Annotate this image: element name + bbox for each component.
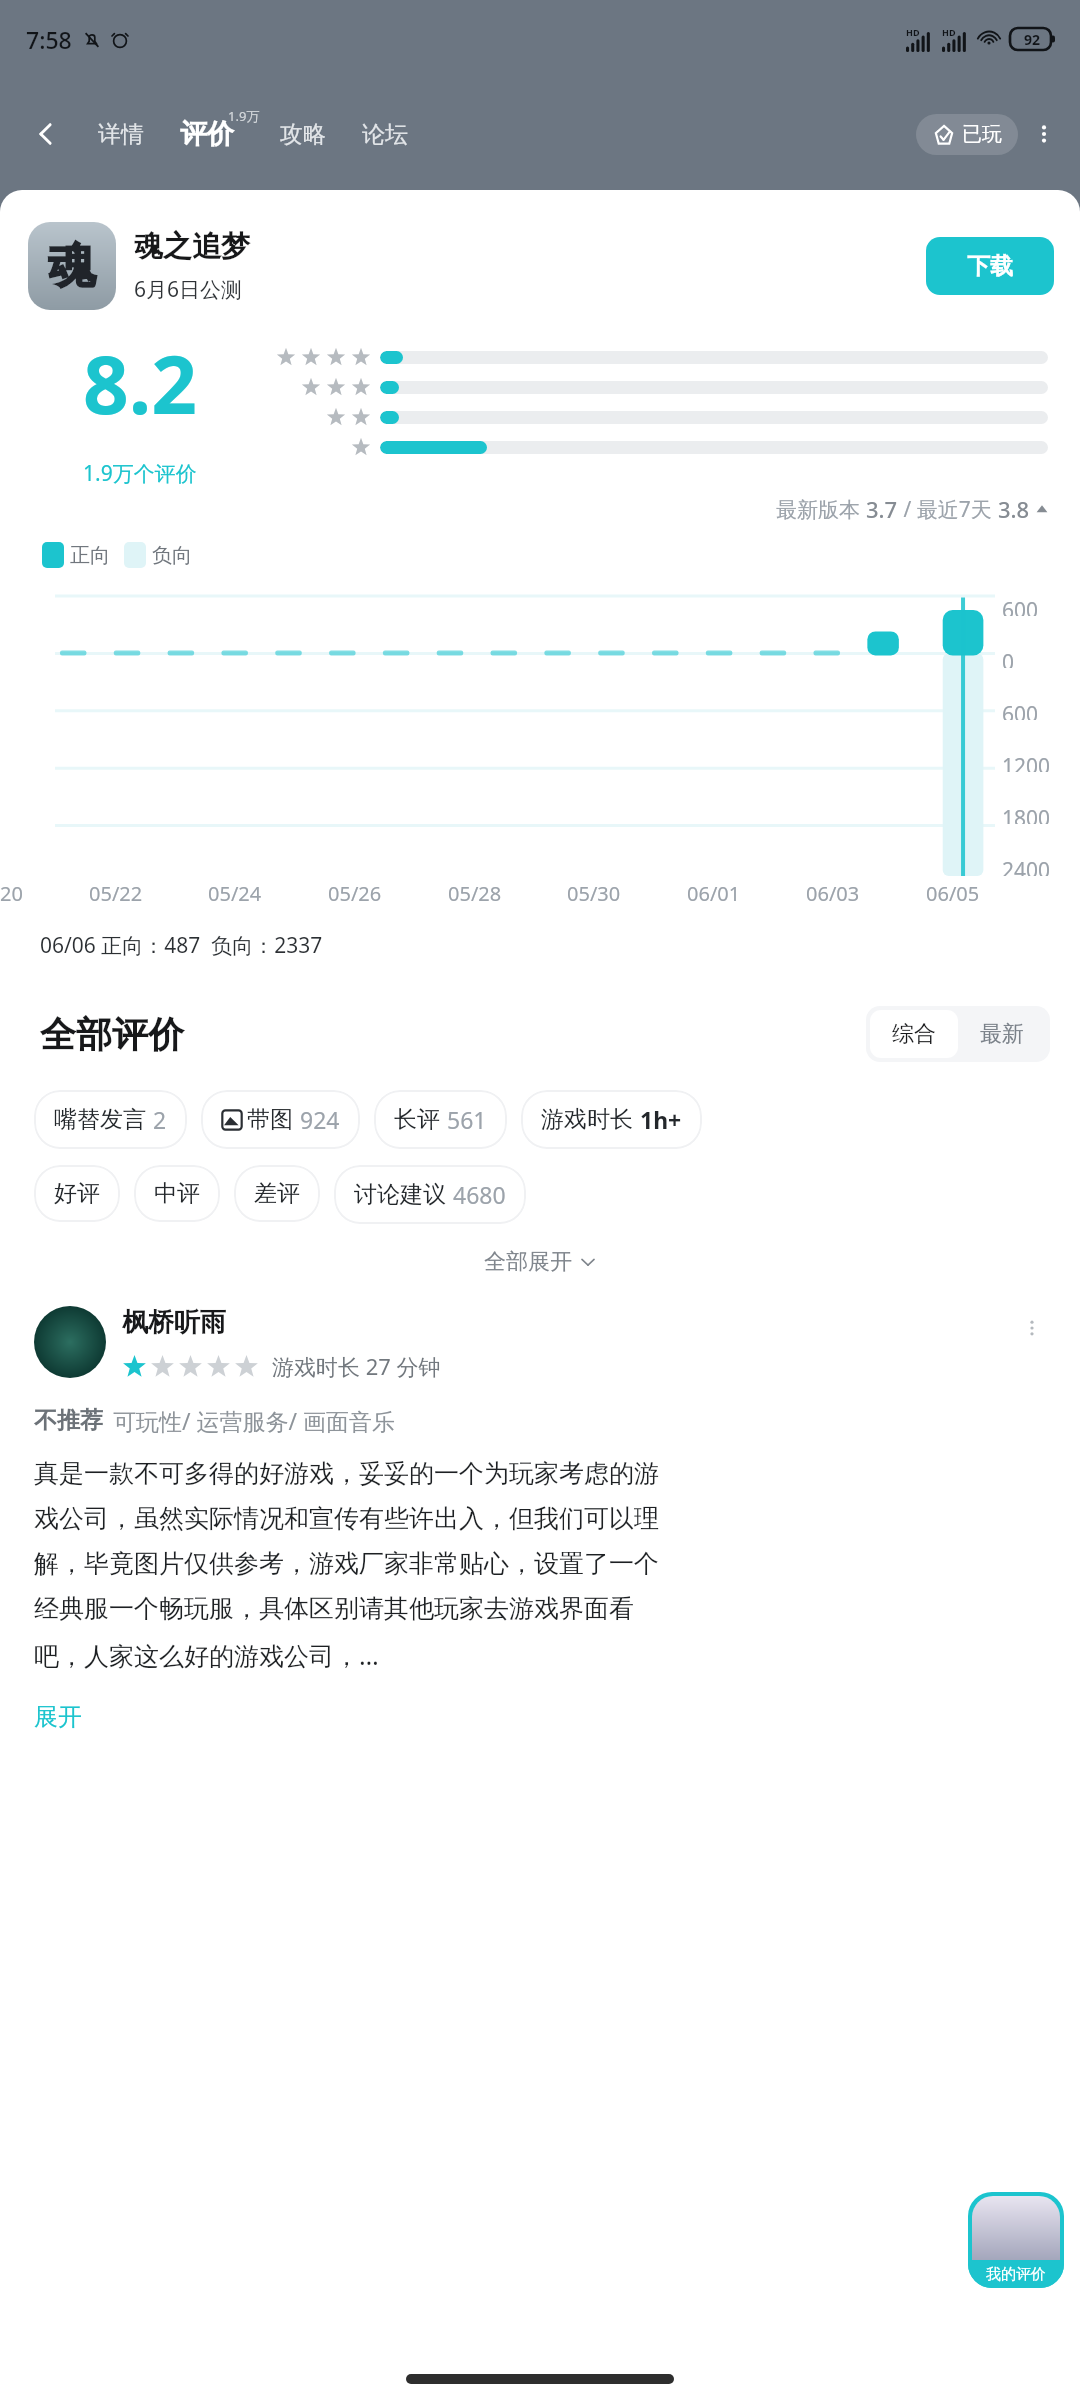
staticText: 解，毕竟图片仅供参考，游戏厂家非常贴心，设置了一个 (34, 1548, 659, 1579)
staticText: / 最近7天 (898, 495, 998, 524)
staticText: 600 (1002, 596, 1039, 616)
button[interactable]: 我的评价 (968, 2192, 1064, 2288)
staticText: 最新 (980, 1020, 1024, 1048)
staticText: 评价 (180, 117, 234, 151)
staticText: 游戏时长 27 分钟 (272, 1351, 441, 1381)
staticText: 92 (1024, 30, 1041, 49)
staticText: 讨论建议 (354, 1180, 446, 1209)
staticText: 中评 (154, 1179, 200, 1208)
staticText: 05/30 (567, 880, 621, 907)
button[interactable]: 已玩 (916, 114, 1018, 155)
button[interactable]: 中评 (134, 1165, 220, 1222)
staticText: 长评 (394, 1105, 440, 1134)
staticText: 1.9万 (228, 107, 260, 125)
button[interactable]: 下载 (926, 237, 1054, 295)
button[interactable]: 全部展开 (0, 1248, 1080, 1276)
staticText: 可玩性/ 运营服务/ 画面音乐 (113, 1405, 396, 1436)
staticText: 戏公司，虽然实际情况和宣传有些许出入，但我们可以理 (34, 1503, 659, 1534)
staticText: 正向 (70, 543, 110, 568)
staticText: 枫桥听雨 (122, 1306, 226, 1339)
button[interactable]: 评价 (174, 117, 240, 151)
staticText: 561 (447, 1104, 487, 1135)
staticText: 1800 (1002, 804, 1051, 824)
staticText: 8.2 (83, 328, 197, 437)
staticText: 魂 (48, 236, 96, 296)
staticText: 06/06 正向：487 负向：2337 (40, 931, 323, 960)
staticText: 2400 (1002, 856, 1051, 876)
staticText: 最新版本 (776, 495, 866, 524)
staticText: 20 (0, 880, 23, 907)
staticText: 真是一款不可多得的好游戏，妥妥的一个为玩家考虑的游 (34, 1458, 659, 1489)
staticText: 05/22 (89, 880, 143, 907)
button[interactable]: Review options (1010, 1306, 1054, 1350)
staticText: 3.7 (866, 494, 898, 524)
staticText: 全部评价 (40, 1012, 184, 1057)
staticText: 攻略 (280, 120, 326, 149)
button[interactable]: 最新 (958, 1010, 1046, 1058)
staticText: 展开 (34, 1702, 82, 1732)
button[interactable]: 攻略 (274, 114, 332, 155)
staticText: 全部展开 (484, 1248, 572, 1276)
button[interactable]: 带图 (201, 1090, 360, 1149)
button[interactable]: 详情 (92, 114, 150, 155)
button[interactable]: 论坛 (356, 114, 414, 155)
staticText: 吧，人家这么好的游戏公司，… (34, 1638, 379, 1672)
staticText: 好评 (54, 1179, 100, 1208)
staticText: 06/05 (926, 880, 980, 907)
staticText: 带图 (247, 1105, 293, 1134)
staticText: 06/01 (687, 880, 741, 907)
button[interactable]: 嘴替发言 (34, 1090, 187, 1149)
button[interactable]: Game icon (28, 222, 116, 310)
button[interactable]: 差评 (234, 1165, 320, 1222)
staticText: 下载 (967, 252, 1013, 281)
button[interactable]: Back (14, 102, 78, 166)
button[interactable]: 1.9万个评价 (83, 459, 197, 488)
staticText: 4680 (453, 1179, 506, 1210)
staticText: HD (942, 26, 956, 38)
staticText: 负向 (152, 543, 192, 568)
staticText: 我的评价 (986, 2265, 1046, 2284)
button[interactable]: 长评 (374, 1090, 507, 1149)
staticText: 600 (1002, 700, 1039, 720)
staticText: 已玩 (962, 122, 1002, 147)
staticText: 1200 (1002, 752, 1051, 772)
button[interactable]: 讨论建议 (334, 1165, 526, 1224)
staticText: 论坛 (362, 120, 408, 149)
staticText: 0 (1002, 648, 1015, 668)
staticText: 差评 (254, 1179, 300, 1208)
button[interactable]: User avatar (34, 1306, 106, 1378)
staticText: 1h+ (640, 1104, 682, 1135)
staticText: 1.9万个评价 (83, 459, 197, 488)
staticText: 3.8 (998, 494, 1030, 524)
button[interactable]: 游戏时长 (521, 1090, 702, 1149)
staticText: 游戏时长 (541, 1105, 633, 1134)
staticText: 05/24 (208, 880, 262, 907)
staticText: 05/28 (448, 880, 502, 907)
staticText: 不推荐 (34, 1406, 103, 1435)
staticText: 6月6日公测 (134, 275, 243, 304)
staticText: HD (906, 26, 920, 38)
button[interactable]: 综合 (870, 1010, 958, 1058)
staticText: 05/26 (328, 880, 382, 907)
staticText: 详情 (98, 120, 144, 149)
staticText: 06/03 (806, 880, 860, 907)
staticText: 嘴替发言 (54, 1105, 146, 1134)
staticText: 魂之追梦 (134, 228, 250, 265)
staticText: 2 (153, 1104, 167, 1135)
button[interactable]: 展开 (34, 1702, 82, 1732)
button[interactable]: More options (1018, 108, 1070, 160)
staticText: 综合 (892, 1020, 936, 1048)
button[interactable]: 好评 (34, 1165, 120, 1222)
staticText: 924 (300, 1104, 340, 1135)
staticText: 经典服一个畅玩服，具体区别请其他玩家去游戏界面看 (34, 1593, 634, 1624)
staticText: 7:58 (26, 24, 72, 55)
